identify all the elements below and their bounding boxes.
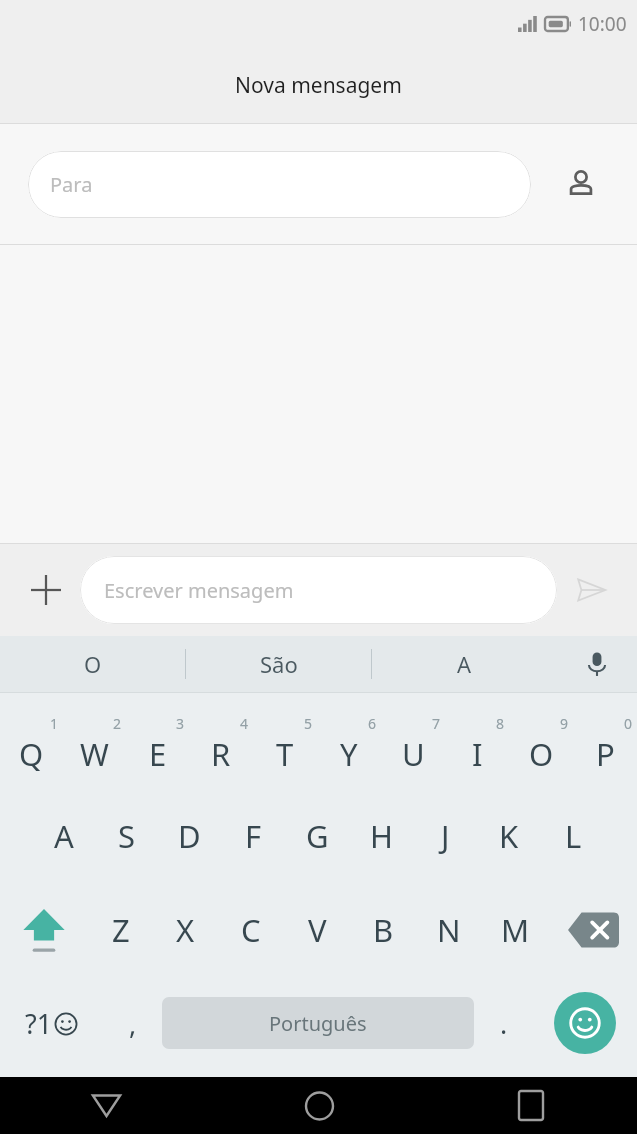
staticText: 8 <box>496 714 505 733</box>
staticText: H <box>370 815 393 857</box>
staticText: 3 <box>176 714 185 733</box>
button[interactable]: N <box>416 883 482 977</box>
staticText: . <box>500 1005 508 1042</box>
staticText: M <box>501 909 530 951</box>
button[interactable]: D <box>158 789 221 883</box>
button[interactable]: Início <box>213 1077 425 1134</box>
button[interactable]: 1 <box>0 699 63 789</box>
button[interactable]: 2 <box>63 699 126 789</box>
staticText: 6 <box>368 714 377 733</box>
button[interactable]: Adicionar anexo <box>18 562 74 618</box>
button[interactable]: V <box>284 883 350 977</box>
staticText: L <box>565 815 582 857</box>
staticText: C <box>241 909 261 951</box>
button[interactable]: . <box>474 977 533 1069</box>
button[interactable]: 3 <box>126 699 189 789</box>
button[interactable]: Entrada de voz <box>557 636 637 692</box>
button[interactable]: S <box>95 789 158 883</box>
button[interactable]: Para <box>28 151 531 218</box>
staticText: Z <box>112 909 130 951</box>
staticText: 2 <box>113 714 122 733</box>
button[interactable]: J <box>413 789 477 883</box>
button[interactable]: 8 <box>445 699 509 789</box>
staticText: 7 <box>432 714 441 733</box>
button[interactable]: 9 <box>509 699 573 789</box>
button[interactable]: H <box>349 789 413 883</box>
staticText: P <box>596 733 615 775</box>
button[interactable]: São <box>186 636 371 692</box>
staticText: U <box>402 733 425 775</box>
button[interactable]: Escrever mensagem <box>80 556 557 624</box>
button[interactable]: , <box>103 977 162 1069</box>
staticText: D <box>178 815 201 857</box>
staticText: ?1 <box>25 1005 53 1042</box>
button[interactable]: X <box>153 883 218 977</box>
staticText: E <box>149 733 167 775</box>
staticText: Para <box>50 171 93 198</box>
staticText: V <box>308 909 327 951</box>
staticText: K <box>499 815 519 857</box>
staticText: São <box>260 649 298 679</box>
staticText: , <box>129 1005 137 1042</box>
staticText: 0 <box>624 714 633 733</box>
button[interactable]: B <box>350 883 416 977</box>
button[interactable]: 4 <box>189 699 253 789</box>
staticText: B <box>373 909 394 951</box>
button[interactable]: A <box>32 789 95 883</box>
button[interactable]: L <box>541 789 605 883</box>
button[interactable]: K <box>477 789 541 883</box>
button[interactable]: 5 <box>253 699 317 789</box>
button[interactable]: Z <box>88 883 153 977</box>
button[interactable]: Shift <box>0 883 88 977</box>
staticText: N <box>437 909 461 951</box>
staticText: Português <box>269 1010 367 1037</box>
staticText: 10:00 <box>578 11 627 37</box>
button[interactable]: Retrocesso <box>548 883 637 977</box>
button[interactable]: Português <box>162 997 474 1049</box>
staticText: T <box>276 733 294 775</box>
staticText: 9 <box>560 714 569 733</box>
staticText: W <box>80 733 109 775</box>
button[interactable]: 7 <box>381 699 445 789</box>
staticText: O <box>529 733 554 775</box>
button[interactable]: 0 <box>573 699 637 789</box>
staticText: 5 <box>304 714 313 733</box>
button[interactable]: G <box>285 789 349 883</box>
button[interactable]: Escolher contacto <box>553 156 609 212</box>
button[interactable]: A <box>372 636 557 692</box>
staticText: A <box>457 649 472 679</box>
staticText: R <box>211 733 231 775</box>
staticText: S <box>118 815 136 857</box>
staticText: O <box>84 649 102 679</box>
button[interactable]: Emojis <box>533 977 637 1069</box>
staticText: J <box>441 815 450 857</box>
staticText: Escrever mensagem <box>104 577 294 604</box>
staticText: F <box>245 815 262 857</box>
button[interactable]: C <box>218 883 284 977</box>
staticText: 1 <box>50 714 59 733</box>
staticText: 4 <box>240 714 249 733</box>
button[interactable]: Enviar <box>563 562 619 618</box>
button[interactable]: ?1 <box>0 977 103 1069</box>
staticText: A <box>54 815 74 857</box>
button[interactable]: M <box>482 883 548 977</box>
button[interactable]: 6 <box>317 699 381 789</box>
staticText: Nova mensagem <box>235 71 402 100</box>
staticText: Q <box>19 733 44 775</box>
button[interactable]: Voltar <box>0 1077 213 1134</box>
button[interactable]: F <box>221 789 285 883</box>
button[interactable]: Recentes <box>425 1077 637 1134</box>
staticText: G <box>306 815 329 857</box>
staticText: X <box>176 909 195 951</box>
staticText: I <box>472 733 483 775</box>
staticText: Y <box>340 733 358 775</box>
button[interactable]: O <box>0 636 185 692</box>
